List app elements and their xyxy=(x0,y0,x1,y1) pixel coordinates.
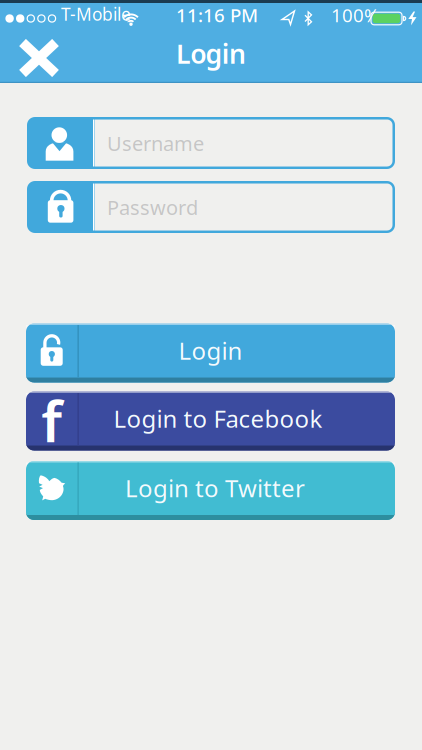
staticText: Password xyxy=(107,194,198,221)
button[interactable]: Login xyxy=(26,323,395,382)
button[interactable]: f xyxy=(26,391,395,450)
button[interactable]: Username xyxy=(27,117,395,169)
staticText: Login to Facebook xyxy=(113,403,322,434)
button[interactable]: Login to Twitter xyxy=(26,461,395,520)
button[interactable]: Close xyxy=(0,3,78,83)
staticText: 11:16 PM xyxy=(176,2,258,27)
staticText: Login to Twitter xyxy=(125,472,305,504)
button[interactable]: Password xyxy=(27,181,395,233)
staticText: Login xyxy=(176,36,246,71)
staticText: Login xyxy=(178,335,242,366)
staticText: Username xyxy=(107,130,204,157)
staticText: f xyxy=(41,383,62,458)
staticText: 100% xyxy=(331,2,380,27)
staticText: T-Mobile xyxy=(61,2,131,25)
